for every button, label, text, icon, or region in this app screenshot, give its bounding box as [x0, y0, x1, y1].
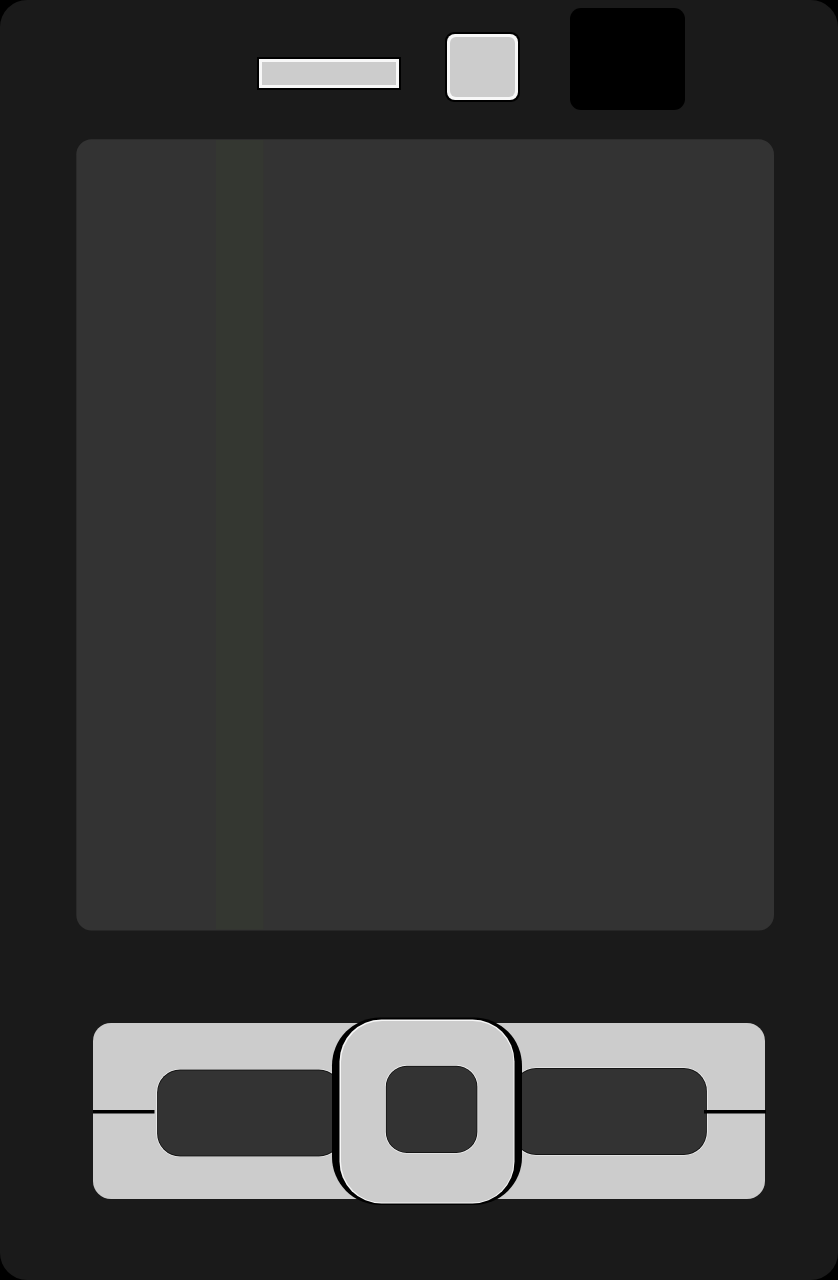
button[interactable]: Right soft key	[514, 1069, 706, 1154]
button[interactable]: Select	[332, 1018, 522, 1206]
button[interactable]: Left soft key	[158, 1071, 342, 1156]
